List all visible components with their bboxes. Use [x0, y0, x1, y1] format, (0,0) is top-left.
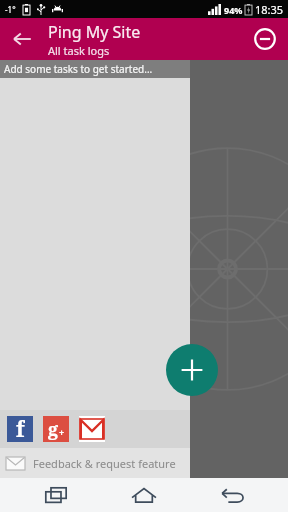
staticText: 94%	[224, 4, 243, 16]
button[interactable]: Navigate up	[0, 18, 44, 60]
staticText: All task logs	[48, 43, 110, 58]
button[interactable]: Recent apps	[24, 478, 88, 512]
staticText: -1°	[5, 4, 16, 15]
staticText: 18:35	[255, 2, 284, 17]
staticText: Feedback & request feature	[33, 456, 176, 471]
button[interactable]: Add some tasks to get started...	[0, 60, 190, 78]
button[interactable]: Feedback & request feature	[0, 448, 190, 478]
button[interactable]: Clear all logs	[248, 22, 282, 56]
staticText: +	[59, 426, 65, 438]
button[interactable]: Back	[200, 478, 264, 512]
button[interactable]: Gmail	[79, 416, 105, 442]
staticText: Add some tasks to get started...	[4, 62, 153, 76]
button[interactable]: Google Plus	[43, 416, 69, 442]
button[interactable]: Facebook	[7, 416, 33, 442]
button[interactable]: Add new task	[166, 344, 218, 396]
staticText: g	[48, 417, 59, 442]
button[interactable]: Home	[112, 478, 176, 512]
staticText: f	[16, 415, 25, 441]
staticText: Ping My Site	[48, 21, 141, 43]
